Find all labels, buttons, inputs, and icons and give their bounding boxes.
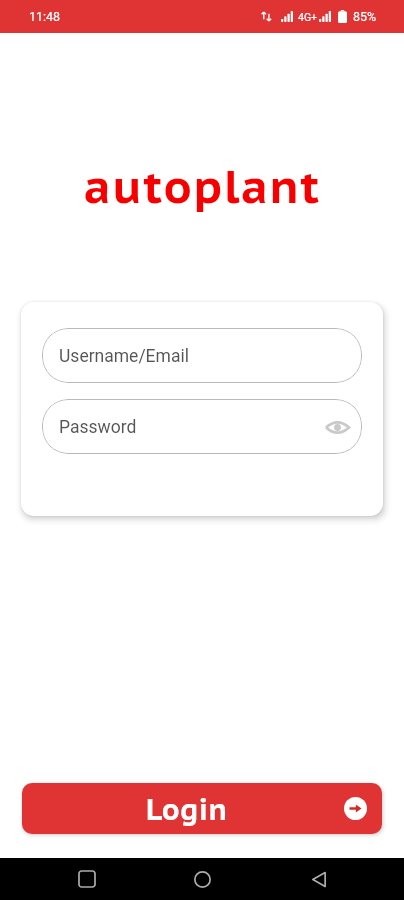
staticText: 85%: [353, 9, 377, 24]
button[interactable]: Back: [297, 858, 340, 900]
button[interactable]: Username/Email: [42, 328, 362, 383]
staticText: autoplant: [84, 156, 321, 216]
button[interactable]: Login: [22, 783, 382, 834]
button[interactable]: Recents: [65, 858, 108, 900]
staticText: 11:48: [29, 9, 61, 24]
button[interactable]: Show password: [324, 414, 350, 440]
staticText: Username/Email: [59, 346, 189, 367]
button[interactable]: Password: [42, 399, 362, 454]
button[interactable]: Home: [181, 858, 224, 900]
staticText: Login: [146, 790, 228, 828]
staticText: Password: [59, 417, 137, 438]
staticText: 4G+: [298, 11, 318, 23]
